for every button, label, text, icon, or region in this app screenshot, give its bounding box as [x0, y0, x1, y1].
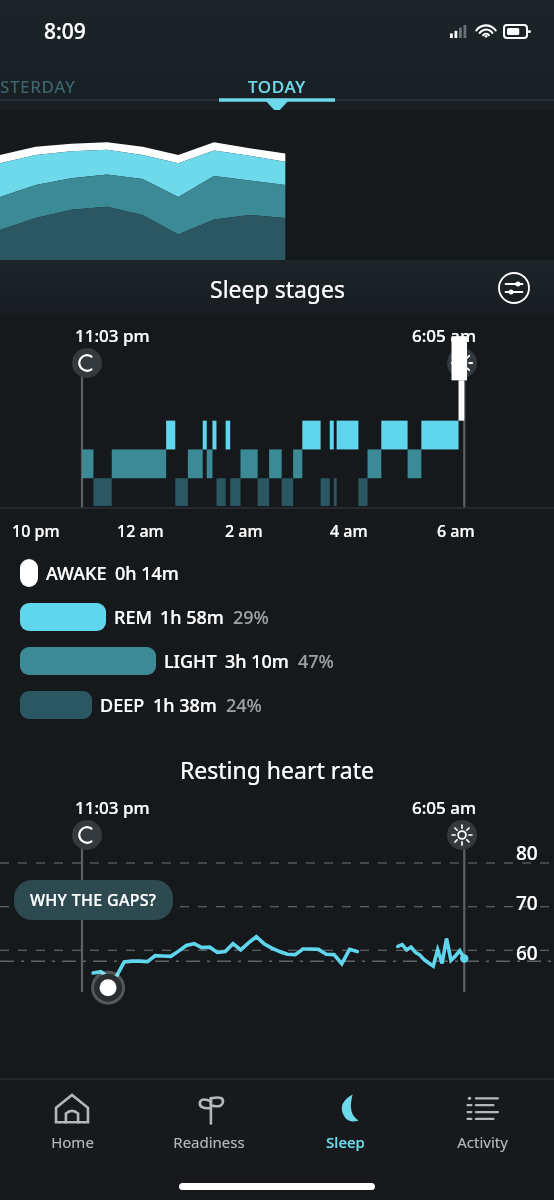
button[interactable]: REM — [20, 602, 554, 632]
button[interactable]: STERDAY — [0, 75, 76, 98]
staticText: 24% — [226, 693, 262, 718]
staticText: Readiness — [173, 1132, 245, 1152]
staticText: 1h 58m — [160, 605, 224, 630]
staticText: 3h 10m — [225, 649, 289, 674]
button[interactable]: Sleep — [280, 1080, 410, 1172]
staticText: 70 — [516, 890, 538, 916]
staticText: 2 am — [225, 520, 263, 542]
staticText: 11:03 pm — [75, 796, 150, 819]
staticText: 11:03 pm — [75, 324, 150, 347]
button[interactable]: WHY THE GAPS? — [14, 880, 173, 920]
staticText: 8:09 — [44, 17, 86, 46]
staticText: Resting heart rate — [180, 754, 374, 785]
staticText: Activity — [457, 1132, 508, 1152]
staticText: 0h 14m — [115, 561, 179, 586]
button[interactable]: DEEP — [20, 690, 554, 720]
staticText: TODAY — [248, 75, 306, 98]
staticText: 29% — [233, 605, 269, 630]
staticText: 6 am — [437, 520, 475, 542]
staticText: DEEP — [100, 693, 145, 718]
staticText: 1h 38m — [153, 693, 217, 718]
staticText: LIGHT — [164, 649, 217, 674]
staticText: 60 — [516, 940, 538, 966]
button[interactable]: LIGHT — [20, 646, 554, 676]
button[interactable]: TODAY — [212, 62, 342, 110]
staticText: Sleep — [326, 1132, 365, 1152]
button[interactable]: AWAKE — [20, 558, 554, 588]
staticText: WHY THE GAPS? — [30, 889, 157, 911]
staticText: 12 am — [117, 520, 164, 542]
staticText: 6:05 am — [412, 324, 477, 347]
staticText: REM — [114, 605, 152, 630]
staticText: 4 am — [330, 520, 368, 542]
staticText: AWAKE — [46, 561, 107, 586]
button[interactable]: Activity — [417, 1080, 547, 1172]
staticText: 10 pm — [12, 520, 60, 542]
button[interactable]: Home — [7, 1080, 137, 1172]
button[interactable]: Readiness — [144, 1080, 274, 1172]
staticText: 80 — [516, 840, 538, 866]
staticText: Home — [51, 1132, 94, 1152]
staticText: Sleep stages — [210, 273, 345, 304]
staticText: 6:05 am — [412, 796, 477, 819]
staticText: 47% — [298, 649, 334, 674]
button[interactable]: Sleep stage settings — [492, 266, 536, 310]
